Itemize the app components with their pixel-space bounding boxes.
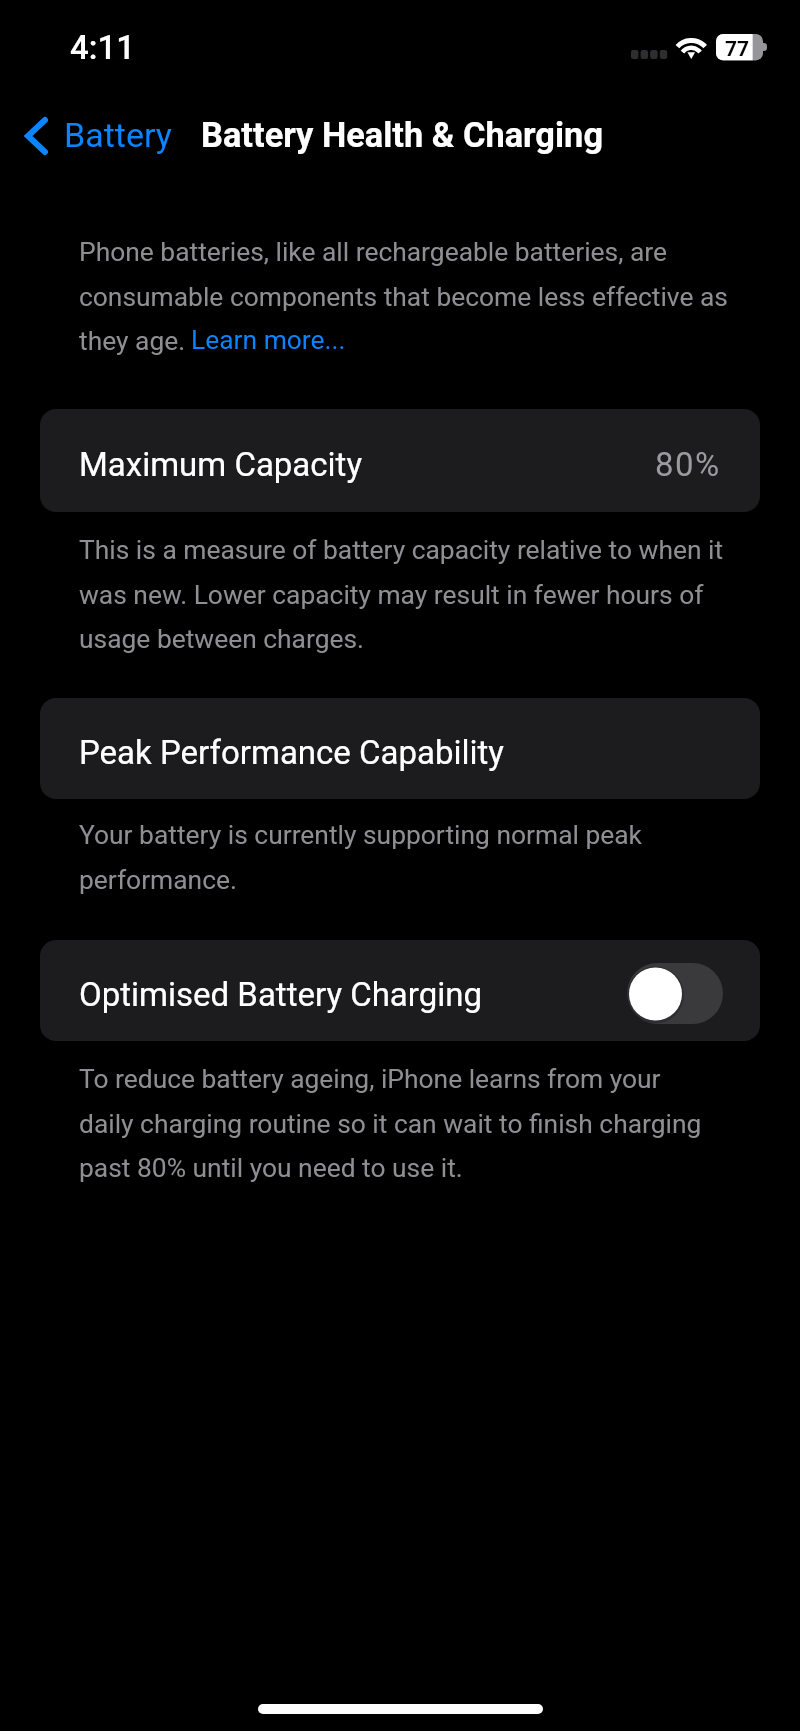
button[interactable]: Learn more... [191, 322, 349, 358]
button[interactable]: Optimised Battery Charging [40, 940, 760, 1041]
staticText: To reduce battery ageing, iPhone learns … [79, 1064, 779, 1183]
staticText: Optimised Battery Charging [79, 975, 483, 1014]
staticText: Battery Health & Charging [201, 115, 604, 155]
button[interactable]: Optimised Battery Charging, off [627, 963, 723, 1024]
staticText: 4:11 [70, 28, 135, 67]
button[interactable]: Back to Battery [20, 108, 176, 164]
button[interactable]: Peak Performance Capability [40, 698, 760, 799]
staticText: Maximum Capacity [79, 445, 363, 484]
staticText: Your battery is currently supporting nor… [79, 820, 779, 895]
staticText: This is a measure of battery capacity re… [79, 535, 779, 654]
staticText: Phone batteries, like all rechargeable b… [79, 237, 779, 356]
staticText: Peak Performance Capability [79, 733, 504, 772]
staticText: 80% [655, 445, 721, 484]
staticText: 77 [725, 37, 750, 62]
staticText: Battery [64, 115, 172, 155]
staticText: Learn more... [191, 325, 346, 356]
button[interactable]: Maximum Capacity [40, 409, 760, 512]
